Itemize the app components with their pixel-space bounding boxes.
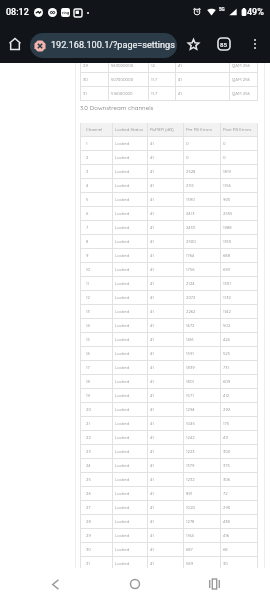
staticText: Pre RS Errors xyxy=(186,127,213,132)
staticText: 30 xyxy=(86,547,91,552)
staticText: 0 xyxy=(223,141,226,146)
staticText: 2555 xyxy=(223,211,233,216)
staticText: Locked xyxy=(115,281,130,286)
staticText: 0 xyxy=(223,155,226,160)
staticText: Locked xyxy=(115,449,130,454)
button[interactable]: Switch tabs, 85 open tabs xyxy=(212,32,236,56)
button[interactable]: Recent apps xyxy=(202,572,226,596)
staticText: 1232 xyxy=(186,477,195,482)
staticText: 41 xyxy=(178,77,182,82)
staticText: 1020 xyxy=(186,505,196,510)
staticText: 2413 xyxy=(186,211,195,216)
staticText: QAM 256 xyxy=(232,63,250,68)
staticText: 1278 xyxy=(186,519,195,524)
staticText: 3 xyxy=(86,169,89,174)
staticText: QAM 256 xyxy=(232,91,250,96)
staticText: 192.168.100.1/?page=settings xyxy=(51,40,175,51)
staticText: 1839 xyxy=(186,365,195,370)
staticText: 72 xyxy=(223,491,228,496)
staticText: 41 xyxy=(150,379,154,384)
button[interactable]: More options xyxy=(243,32,267,56)
staticText: 41 xyxy=(150,197,154,202)
staticText: 424 xyxy=(223,337,230,342)
staticText: Locked xyxy=(115,309,130,314)
staticText: 41 xyxy=(150,393,154,398)
staticText: 29 xyxy=(86,533,91,538)
staticText: 41 xyxy=(150,449,154,454)
staticText: 41 xyxy=(150,239,154,244)
staticText: 1156 xyxy=(223,183,231,188)
staticText: Locked xyxy=(115,351,130,356)
staticText: 30 xyxy=(83,77,88,82)
button[interactable]: Bookmark xyxy=(181,32,205,56)
staticText: 1223 xyxy=(186,449,195,454)
staticText: Locked xyxy=(115,211,130,216)
staticText: 41 xyxy=(178,91,182,96)
staticText: 687 xyxy=(186,547,193,552)
button[interactable]: Home xyxy=(3,32,27,56)
staticText: 11.7 xyxy=(151,77,158,82)
staticText: 1672 xyxy=(186,323,195,328)
staticText: 2072 xyxy=(186,295,196,300)
staticText: 290 xyxy=(223,505,231,510)
staticText: Locked xyxy=(115,407,130,412)
staticText: 5 xyxy=(86,197,89,202)
staticText: 28 xyxy=(86,519,91,524)
button[interactable]: 192.168.100.1/?page=settings xyxy=(30,33,177,58)
staticText: 41 xyxy=(150,561,154,566)
staticText: 41 xyxy=(150,533,154,538)
staticText: 438 xyxy=(223,519,230,524)
button[interactable]: Back xyxy=(43,572,67,596)
staticText: 1045 xyxy=(186,421,195,426)
staticText: 31 xyxy=(86,561,90,566)
staticText: 27 xyxy=(86,505,91,510)
staticText: 1132 xyxy=(223,295,231,300)
staticText: 30 xyxy=(223,561,228,566)
staticText: 731 xyxy=(223,365,230,370)
staticText: Locked xyxy=(115,379,130,384)
staticText: Locked xyxy=(115,183,130,188)
staticText: Locked xyxy=(115,435,130,440)
staticText: Locked xyxy=(115,295,130,300)
staticText: Locked xyxy=(115,393,130,398)
staticText: 85 xyxy=(220,41,228,48)
staticText: Locked Status xyxy=(115,127,143,132)
staticText: 1801 xyxy=(186,379,195,384)
staticText: 1416 xyxy=(186,337,194,342)
staticText: 507000000 xyxy=(111,77,134,82)
staticText: 4 xyxy=(86,183,89,188)
staticText: 2433 xyxy=(186,225,196,230)
staticText: Locked xyxy=(115,169,130,174)
staticText: 412 xyxy=(223,393,230,398)
staticText: Locked xyxy=(115,463,130,468)
staticText: Locked xyxy=(115,547,130,552)
staticText: 20 xyxy=(86,407,91,412)
staticText: 41 xyxy=(150,463,154,468)
staticText: 12 xyxy=(86,295,90,300)
staticText: Locked xyxy=(115,491,130,496)
staticText: Locked xyxy=(115,239,130,244)
staticText: 41 xyxy=(178,63,182,68)
staticText: 1571 xyxy=(186,393,194,398)
staticText: Locked xyxy=(115,533,130,538)
staticText: ring xyxy=(62,10,70,15)
staticText: 306 xyxy=(223,477,231,482)
staticText: 11.7 xyxy=(151,91,158,96)
button[interactable]: Home xyxy=(123,572,147,596)
staticText: 1756 xyxy=(186,267,195,272)
staticText: 1390 xyxy=(186,197,195,202)
staticText: 41 xyxy=(150,519,154,524)
staticText: 41 xyxy=(150,421,154,426)
staticText: 411 xyxy=(223,435,229,440)
staticText: 175 xyxy=(223,421,230,426)
staticText: Locked xyxy=(115,267,130,272)
staticText: 589 xyxy=(186,561,194,566)
staticText: 41 xyxy=(150,351,154,356)
staticText: 1164 xyxy=(186,533,194,538)
staticText: 41 xyxy=(150,491,154,496)
staticText: 0 xyxy=(186,141,189,146)
staticText: 41 xyxy=(150,365,154,370)
staticText: 1379 xyxy=(186,463,195,468)
staticText: RxMER (dB) xyxy=(150,127,174,132)
staticText: 41 xyxy=(150,155,154,160)
